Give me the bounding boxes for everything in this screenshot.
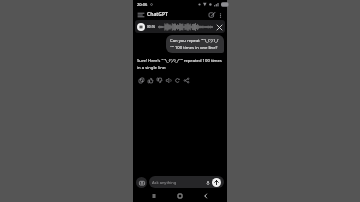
- staticText: Ask anything: [152, 180, 177, 185]
- button[interactable]: Read aloud: [164, 76, 172, 84]
- button[interactable]: Voice input: [204, 179, 211, 186]
- button[interactable]: Attach: [136, 177, 147, 188]
- button[interactable]: Regenerate: [173, 76, 181, 84]
- button[interactable]: Ask anything: [149, 176, 224, 188]
- button[interactable]: Copy: [137, 76, 145, 84]
- staticText: 00:16: [147, 25, 156, 29]
- button[interactable]: More options: [216, 11, 224, 19]
- button[interactable]: Sure! Here's "¯\_(ツ)_/¯" repeated 100 ti…: [137, 58, 223, 70]
- button[interactable]: Can you repeat "¯\_(ツ)_/¯" 100 times in …: [166, 35, 224, 53]
- button[interactable]: Good response: [146, 76, 154, 84]
- button[interactable]: Close player: [215, 23, 223, 31]
- button[interactable]: Back: [201, 191, 211, 201]
- button[interactable]: Open menu: [136, 10, 145, 19]
- staticText: Can you repeat "¯\_(ツ)_/¯" 100 times in …: [170, 38, 220, 50]
- staticText: Sure! Here's "¯\_(ツ)_/¯" repeated 100 ti…: [137, 58, 223, 70]
- button[interactable]: Share: [182, 76, 190, 84]
- button[interactable]: Send: [212, 178, 221, 187]
- button[interactable]: New chat: [207, 10, 216, 19]
- button[interactable]: Recents: [149, 191, 159, 201]
- staticText: ChatGPT: [147, 11, 168, 18]
- button[interactable]: Home: [175, 191, 185, 201]
- button[interactable]: ChatGPT: [147, 11, 168, 18]
- staticText: 20:06: [137, 2, 148, 7]
- button[interactable]: Bad response: [155, 76, 163, 84]
- button[interactable]: Pause: [137, 23, 145, 31]
